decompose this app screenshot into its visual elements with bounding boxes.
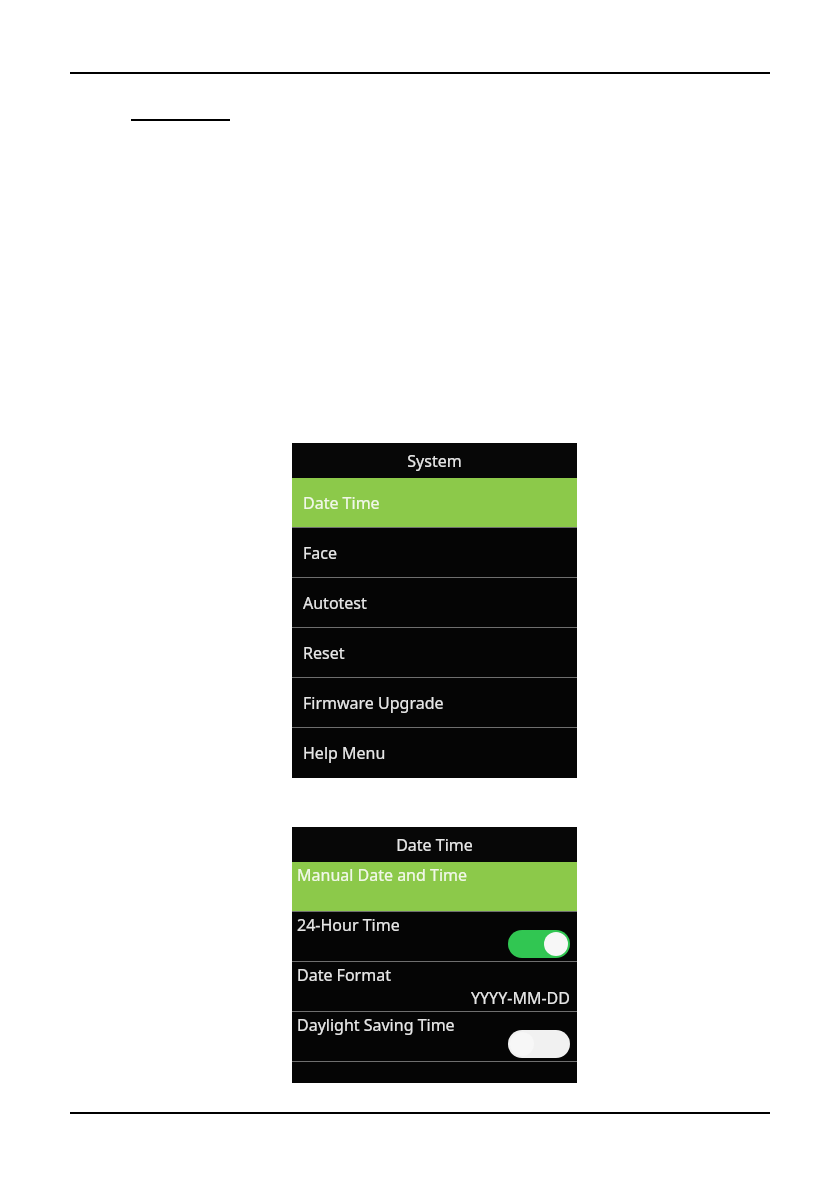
button[interactable]: Firmware Upgrade [292, 678, 577, 727]
button[interactable]: Manual Date and Time [292, 862, 577, 911]
staticText: Daylight Saving Time [297, 1014, 455, 1036]
button[interactable]: Help Menu [292, 728, 577, 777]
staticText: Date Time [303, 492, 380, 514]
button[interactable]: Daylight Saving Time [292, 1012, 577, 1061]
staticText: 24-Hour Time [297, 914, 400, 936]
button[interactable]: Daylight Saving Time off [508, 1030, 570, 1058]
button[interactable]: 24-Hour Time [292, 912, 577, 961]
staticText: YYYY-MM-DD [471, 987, 570, 1009]
staticText: Face [303, 542, 337, 564]
staticText: Help Menu [303, 742, 386, 764]
button[interactable]: 24-Hour Time on [508, 930, 570, 958]
button[interactable]: Date Time [292, 478, 577, 527]
staticText: Reset [303, 642, 345, 664]
button[interactable]: Face [292, 528, 577, 577]
button[interactable]: Date Format [292, 962, 577, 1011]
button[interactable]: Autotest [292, 578, 577, 627]
staticText: Manual Date and Time [297, 864, 468, 886]
staticText: Date Format [297, 964, 391, 986]
staticText: Autotest [303, 592, 367, 614]
staticText: Date Time [396, 834, 473, 856]
staticText: Firmware Upgrade [303, 692, 444, 714]
button[interactable]: Reset [292, 628, 577, 677]
staticText: System [407, 450, 462, 472]
